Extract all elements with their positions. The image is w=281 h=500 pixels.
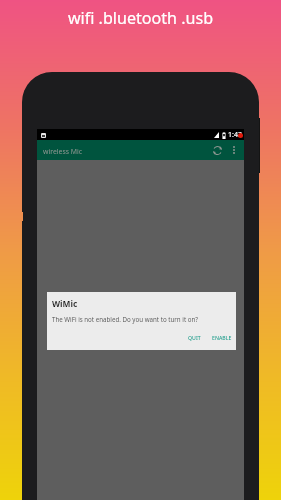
staticText: QUIT <box>188 334 201 341</box>
staticText: 1:43 <box>228 130 242 140</box>
button[interactable]: Refresh <box>208 141 226 159</box>
button[interactable]: QUIT <box>183 331 206 344</box>
staticText: The WiFi is not enabled. Do you want to … <box>52 315 198 323</box>
staticText: wireless Mic <box>43 147 83 156</box>
staticText: wifi .bluetooth .usb <box>0 7 281 29</box>
staticText: WiMic <box>52 298 78 309</box>
button[interactable]: ENABLE <box>206 331 233 344</box>
staticText: ENABLE <box>212 334 232 341</box>
button[interactable]: More options <box>226 142 242 158</box>
